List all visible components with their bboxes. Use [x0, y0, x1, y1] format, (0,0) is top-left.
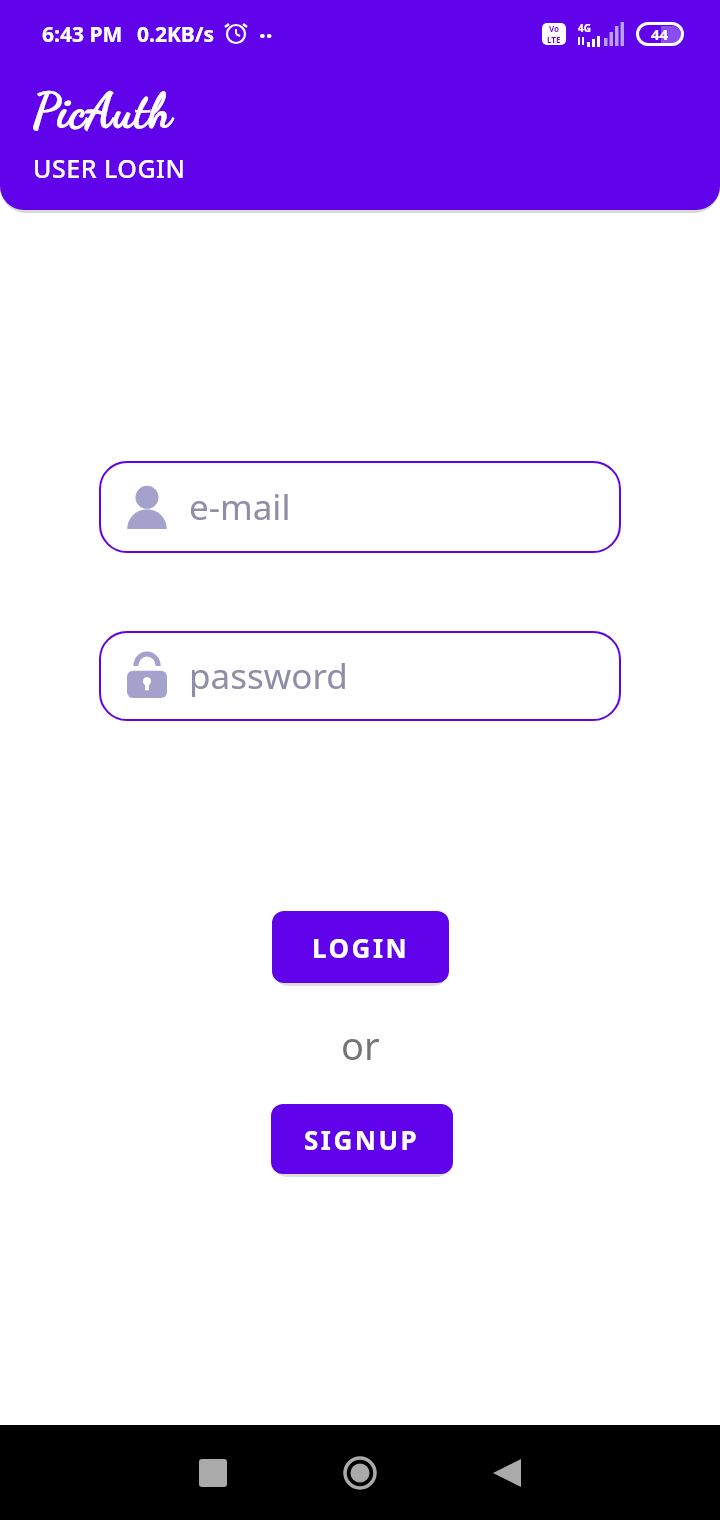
staticText: e-mail — [189, 483, 291, 531]
staticText: Vo — [549, 23, 560, 34]
button[interactable] — [320, 1433, 400, 1513]
staticText: or — [341, 1019, 380, 1071]
staticText: LTE — [547, 34, 561, 45]
button[interactable]: password — [99, 631, 621, 721]
staticText: SIGNUP — [304, 1122, 420, 1157]
button[interactable]: SIGNUP — [271, 1104, 453, 1174]
button[interactable]: e-mail — [99, 461, 621, 553]
staticText: ·· — [259, 18, 273, 51]
staticText: USER LOGIN — [33, 151, 186, 185]
staticText: 4G — [578, 21, 591, 35]
button[interactable]: LOGIN — [272, 911, 449, 983]
button[interactable] — [173, 1433, 253, 1513]
staticText: password — [189, 652, 348, 700]
staticText: 0.2KB/s — [137, 20, 215, 49]
staticText: 6:43 PM — [42, 20, 123, 49]
staticText: LOGIN — [312, 930, 410, 965]
staticText: 44 — [651, 24, 669, 44]
button[interactable] — [467, 1433, 547, 1513]
